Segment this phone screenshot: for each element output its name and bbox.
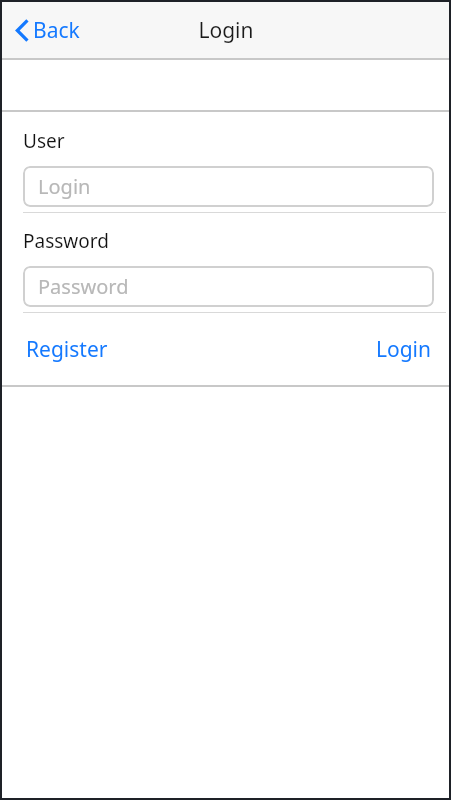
- staticText: User: [23, 128, 65, 154]
- other: Back: [16, 19, 29, 42]
- staticText: Login: [376, 335, 432, 364]
- button[interactable]: Register: [16, 327, 118, 372]
- button[interactable]: Back: [12, 10, 84, 51]
- staticText: Password: [23, 228, 109, 254]
- button[interactable]: Login: [23, 166, 434, 207]
- staticText: Login: [198, 16, 254, 45]
- button[interactable]: Login: [366, 327, 442, 372]
- staticText: Back: [33, 16, 80, 45]
- button[interactable]: Password: [23, 266, 434, 307]
- staticText: Password: [38, 273, 129, 300]
- staticText: Register: [26, 335, 108, 364]
- staticText: Login: [38, 173, 91, 200]
